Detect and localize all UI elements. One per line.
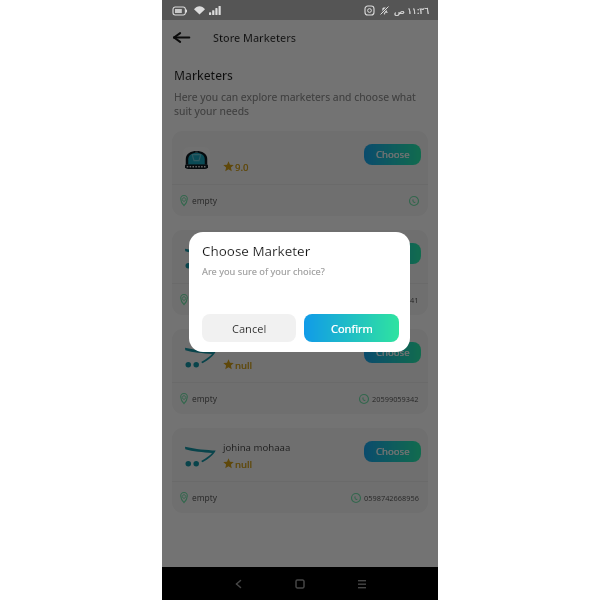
button[interactable]: Back (227, 567, 249, 600)
staticText: empty (192, 393, 218, 404)
button[interactable]: Cancel (202, 314, 296, 342)
staticText: 9.0 (235, 161, 249, 172)
staticText: empty (192, 492, 218, 503)
button[interactable]: Recent apps (351, 567, 373, 600)
staticText: Store Marketers (213, 30, 297, 45)
staticText: 20599059342 (372, 394, 419, 404)
staticText: Choose Marketer (202, 242, 311, 260)
staticText: Marketers (174, 67, 233, 83)
button[interactable]: Choose (364, 441, 421, 462)
button[interactable]: 9.0 (172, 131, 428, 216)
button[interactable]: Choose (364, 243, 421, 264)
button[interactable]: johina mohaaa (172, 428, 428, 513)
button[interactable]: Choose (364, 342, 421, 363)
staticText: Are you sure of your choice? (202, 265, 325, 278)
staticText: Cancel (232, 321, 267, 336)
button[interactable]: Home (289, 567, 311, 600)
staticText: Choose (376, 346, 410, 359)
staticText: null (235, 458, 253, 469)
staticText: Here you can explore marketers and choos… (174, 90, 434, 118)
button[interactable]: null (172, 329, 428, 414)
staticText: 9.5 (235, 260, 249, 271)
button[interactable]: Back (162, 20, 200, 55)
button[interactable]: Confirm (304, 314, 399, 342)
staticText: Confirm (331, 321, 373, 336)
button[interactable]: Choose (364, 144, 421, 165)
staticText: ١١:٣٦ ص (394, 4, 429, 16)
staticText: johina mohaaa (223, 441, 291, 454)
staticText: 20599059341 (372, 295, 419, 305)
staticText: Choose (376, 445, 410, 458)
staticText: empty (192, 195, 218, 206)
staticText: Choose (376, 148, 410, 161)
button[interactable]: 9.5 (172, 230, 428, 315)
staticText: null (235, 359, 253, 370)
staticText: 0598742668956 (364, 493, 419, 503)
